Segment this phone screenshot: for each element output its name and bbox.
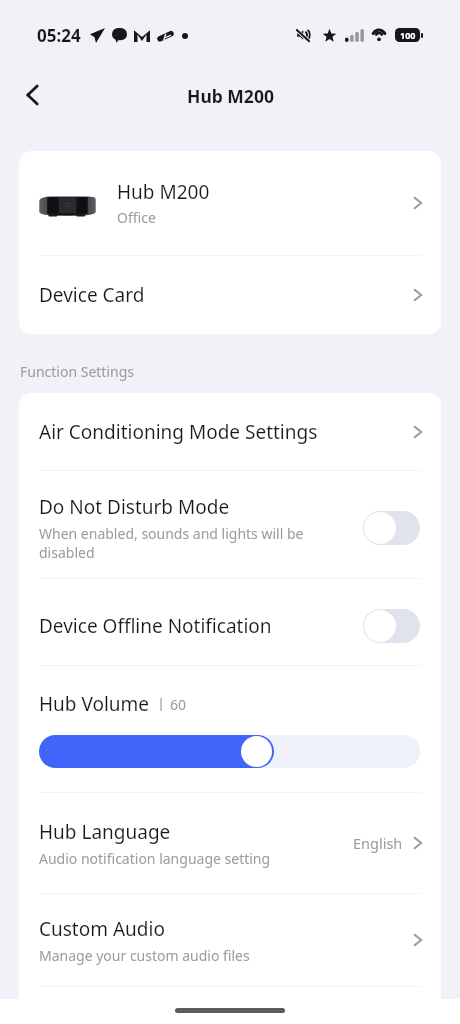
staticText: Do Not Disturb Mode: [39, 494, 230, 520]
button[interactable]: Hub M200: [19, 151, 441, 255]
button[interactable]: Back: [10, 73, 53, 116]
staticText: Function Settings: [20, 362, 134, 381]
button[interactable]: Air Conditioning Mode Settings: [19, 393, 441, 470]
button[interactable]: Hub Language: [19, 793, 441, 893]
staticText: Device Card: [39, 282, 408, 308]
staticText: 05:24: [37, 24, 81, 47]
button[interactable]: Device Offline Notification: [19, 579, 441, 665]
staticText: Hub Volume: [39, 691, 150, 717]
staticText: Hub M200: [117, 179, 210, 205]
staticText: Custom Audio: [39, 916, 165, 942]
button[interactable]: Custom Audio: [19, 894, 441, 986]
button[interactable]: Hub Volume slider: [39, 735, 420, 768]
staticText: Hub Language: [39, 819, 171, 845]
staticText: 60: [170, 695, 187, 714]
staticText: Hub M200: [187, 84, 274, 108]
button[interactable]: Do Not Disturb Mode: [19, 471, 441, 578]
button[interactable]: Device Card: [19, 256, 441, 334]
staticText: English: [353, 833, 403, 853]
staticText: Device Offline Notification: [39, 613, 363, 639]
button[interactable]: Toggle: [363, 609, 420, 643]
staticText: Air Conditioning Mode Settings: [39, 419, 408, 445]
staticText: Manage your custom audio files: [39, 946, 250, 965]
staticText: 100: [400, 29, 416, 41]
button[interactable]: Toggle: [363, 511, 420, 545]
staticText: Audio notification language setting: [39, 849, 271, 868]
staticText: When enabled, sounds and lights will be …: [39, 524, 341, 562]
staticText: Office: [117, 208, 156, 227]
